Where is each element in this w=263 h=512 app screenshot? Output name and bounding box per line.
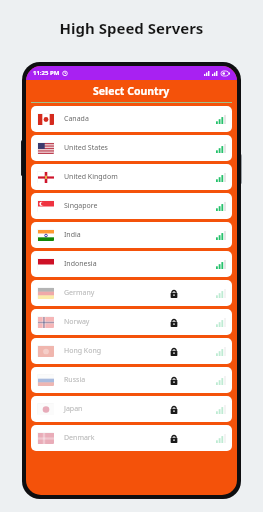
other: Locked — [170, 347, 178, 356]
button[interactable]: Germany — [31, 280, 232, 306]
staticText: India — [64, 230, 81, 240]
other: Locked — [170, 318, 178, 327]
button[interactable]: Hong Kong — [31, 338, 232, 364]
button[interactable]: Russia — [31, 367, 232, 393]
other: Locked — [170, 434, 178, 443]
staticText: Indonesia — [64, 259, 97, 269]
other: Locked — [170, 289, 178, 298]
button[interactable]: United Kingdom — [31, 164, 232, 190]
staticText: Hong Kong — [64, 346, 102, 356]
button[interactable]: Indonesia — [31, 251, 232, 277]
staticText: Germany — [64, 288, 95, 298]
staticText: Japan — [64, 404, 83, 414]
button[interactable]: Canada — [31, 106, 232, 132]
other: Locked — [170, 405, 178, 414]
staticText: Singapore — [64, 201, 98, 211]
button[interactable]: India — [31, 222, 232, 248]
staticText: High Speed Servers — [0, 18, 263, 38]
button[interactable]: Norway — [31, 309, 232, 335]
button[interactable]: Japan — [31, 396, 232, 422]
staticText: United States — [64, 143, 108, 153]
button[interactable]: Denmark — [31, 425, 232, 451]
staticText: Denmark — [64, 433, 95, 443]
other: Locked — [170, 376, 178, 385]
staticText: United Kingdom — [64, 172, 118, 182]
staticText: Norway — [64, 317, 90, 327]
staticText: 11:25 PM — [33, 69, 60, 77]
staticText: Canada — [64, 114, 89, 124]
staticText: Russia — [64, 375, 86, 385]
staticText: Select Country — [93, 84, 170, 98]
button[interactable]: Singapore — [31, 193, 232, 219]
button[interactable]: United States — [31, 135, 232, 161]
